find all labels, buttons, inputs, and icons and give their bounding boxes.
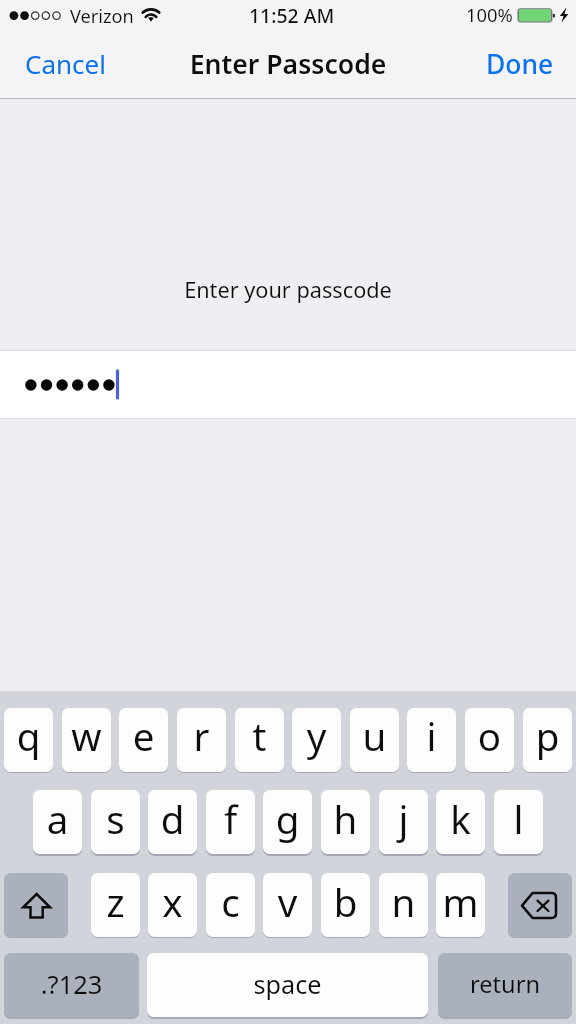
button[interactable] [438, 953, 572, 1017]
button[interactable] [147, 953, 428, 1017]
button[interactable] [0, 351, 576, 419]
staticText: s [91, 793, 140, 845]
staticText: Done [486, 46, 554, 82]
button[interactable] [206, 790, 255, 854]
staticText: q [4, 710, 53, 762]
button[interactable] [91, 790, 140, 854]
staticText: m [436, 876, 485, 928]
button[interactable] [523, 708, 572, 772]
button[interactable] [206, 873, 255, 937]
staticText: space [147, 967, 428, 1001]
button[interactable] [436, 873, 485, 937]
staticText: l [494, 793, 543, 845]
staticText: u [350, 710, 399, 762]
button[interactable] [407, 708, 456, 772]
button[interactable] [12, 36, 118, 92]
staticText: Enter your passcode [0, 275, 576, 305]
button[interactable] [119, 708, 168, 772]
button[interactable] [4, 953, 139, 1017]
button[interactable] [4, 708, 53, 772]
staticText: z [91, 876, 140, 928]
staticText: f [206, 793, 255, 845]
staticText: 11:52 AM [249, 2, 335, 28]
staticText: n [379, 876, 428, 928]
staticText: h [321, 793, 370, 845]
button[interactable] [91, 873, 140, 937]
button[interactable] [148, 790, 197, 854]
button[interactable] [466, 36, 564, 92]
staticText: e [119, 710, 168, 762]
staticText: o [465, 710, 514, 762]
button[interactable] [350, 708, 399, 772]
button[interactable] [33, 790, 82, 854]
staticText: r [177, 710, 226, 762]
staticText: i [407, 710, 456, 762]
staticText: Enter Passcode [0, 46, 576, 82]
staticText: b [321, 876, 370, 928]
button[interactable] [62, 708, 111, 772]
button[interactable]: Delete [508, 873, 572, 937]
button[interactable] [263, 873, 312, 937]
staticText: j [379, 793, 428, 845]
staticText: g [263, 793, 312, 845]
staticText: t [235, 710, 284, 762]
staticText: y [292, 710, 341, 762]
staticText: p [523, 710, 572, 762]
button[interactable] [436, 790, 485, 854]
staticText: c [206, 876, 255, 928]
button[interactable] [235, 708, 284, 772]
staticText: return [438, 968, 572, 1000]
staticText: v [263, 876, 312, 928]
button[interactable] [321, 873, 370, 937]
button[interactable] [379, 873, 428, 937]
button[interactable]: Shift [4, 873, 68, 937]
staticText: a [33, 793, 82, 845]
staticText: .?123 [4, 967, 139, 1002]
staticText: d [148, 793, 197, 845]
button[interactable] [292, 708, 341, 772]
staticText: k [436, 793, 485, 845]
button[interactable] [148, 873, 197, 937]
button[interactable] [494, 790, 543, 854]
button[interactable] [263, 790, 312, 854]
button[interactable] [465, 708, 514, 772]
button[interactable] [321, 790, 370, 854]
staticText: x [148, 876, 197, 928]
staticText: 100% [466, 2, 513, 27]
staticText: Cancel [25, 46, 106, 81]
staticText: Verizon [70, 4, 134, 29]
staticText: w [62, 710, 111, 762]
button[interactable] [177, 708, 226, 772]
button[interactable] [379, 790, 428, 854]
